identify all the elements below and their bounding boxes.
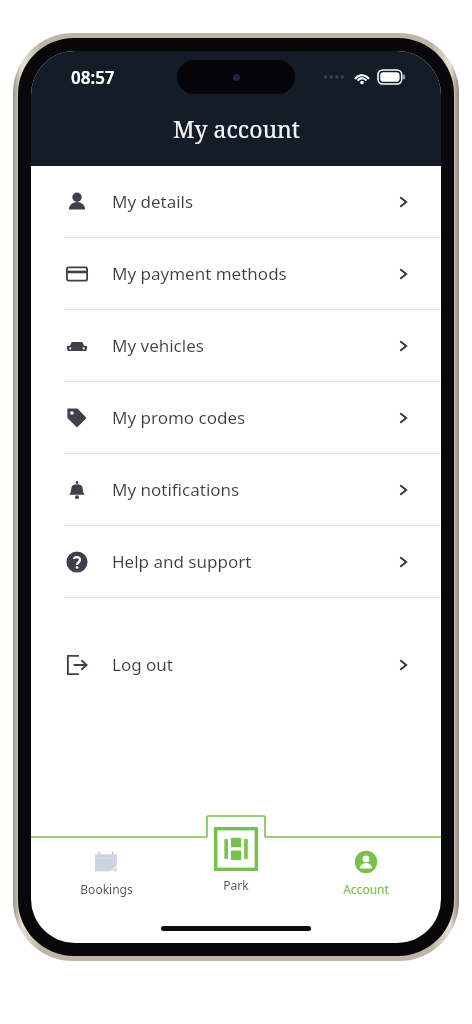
staticText: Help and support: [112, 550, 252, 573]
staticText: Bookings: [80, 881, 133, 897]
button[interactable]: My notifications: [31, 454, 441, 525]
staticText: My notifications: [112, 478, 240, 501]
staticText: My account: [173, 113, 300, 144]
button[interactable]: Help and support: [31, 526, 441, 597]
staticText: Log out: [112, 653, 173, 676]
staticText: Park: [223, 877, 249, 893]
staticText: My promo codes: [112, 406, 246, 429]
staticText: Account: [343, 881, 389, 897]
button[interactable]: My payment methods: [31, 238, 441, 309]
button[interactable]: My promo codes: [31, 382, 441, 453]
staticText: My vehicles: [112, 334, 204, 357]
button[interactable]: Bookings: [51, 811, 161, 897]
staticText: My details: [112, 190, 194, 213]
button[interactable]: My vehicles: [31, 310, 441, 381]
staticText: 08:57: [71, 66, 115, 89]
button[interactable]: Account: [311, 811, 421, 897]
button[interactable]: My details: [31, 166, 441, 237]
button[interactable]: Park: [181, 811, 291, 893]
button[interactable]: Log out: [31, 629, 441, 700]
staticText: My payment methods: [112, 262, 287, 285]
